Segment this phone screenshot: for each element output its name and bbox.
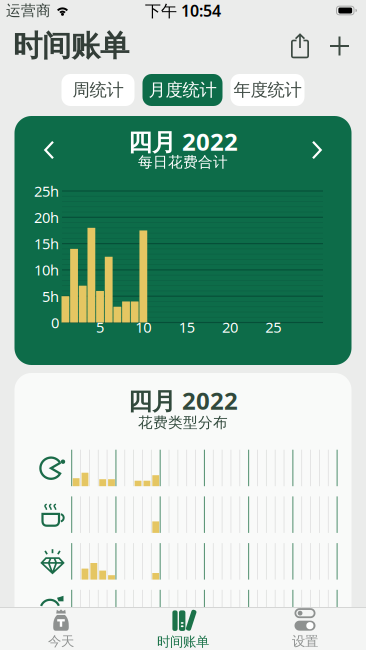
staticText: 月度统计 xyxy=(148,79,216,101)
staticText: 10h xyxy=(34,260,59,280)
staticText: 20h xyxy=(34,208,59,227)
staticText: 今天 xyxy=(48,633,74,650)
button[interactable] xyxy=(330,36,349,55)
staticText: 周统计 xyxy=(72,79,123,101)
staticText: 运营商 xyxy=(6,1,51,19)
staticText: 花费类型分布 xyxy=(138,413,228,431)
staticText: 下午 10:54 xyxy=(145,0,221,21)
staticText: 5h xyxy=(42,286,59,306)
staticText: 0 xyxy=(51,313,59,332)
staticText: 15 xyxy=(179,317,195,337)
staticText: 年度统计 xyxy=(233,79,301,101)
staticText: 四月 2022 xyxy=(128,126,238,157)
button[interactable] xyxy=(34,135,64,165)
staticText: 25 xyxy=(265,317,281,337)
staticText: 15h xyxy=(34,234,59,253)
button[interactable]: 设置 xyxy=(244,608,366,650)
button[interactable]: 今天 xyxy=(0,608,122,650)
staticText: 10 xyxy=(135,317,151,337)
button[interactable]: 月度统计 xyxy=(142,74,222,106)
staticText: 设置 xyxy=(292,633,318,650)
button[interactable]: 年度统计 xyxy=(230,74,304,106)
staticText: 5 xyxy=(96,317,104,337)
staticText: 每日花费合计 xyxy=(138,153,228,171)
button[interactable] xyxy=(302,135,332,165)
button[interactable]: 周统计 xyxy=(61,74,134,106)
staticText: 时间账单 xyxy=(157,634,209,650)
button[interactable] xyxy=(291,33,330,58)
staticText: 时间账单 xyxy=(13,28,129,64)
button[interactable]: 时间账单 xyxy=(122,608,244,650)
staticText: 25h xyxy=(34,181,59,201)
staticText: 四月 2022 xyxy=(128,385,238,416)
staticText: 20 xyxy=(222,317,238,337)
